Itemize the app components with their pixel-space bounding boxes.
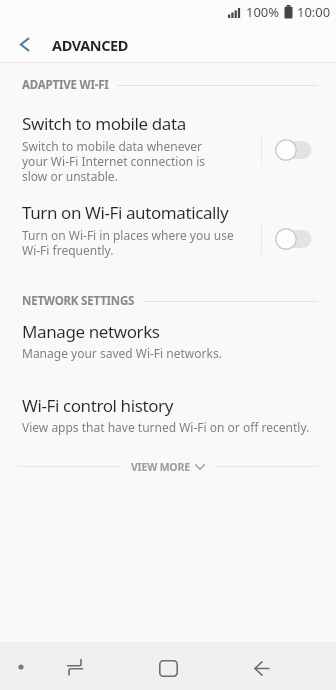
button[interactable]: [0, 27, 48, 62]
staticText: ADVANCED: [52, 35, 129, 55]
button[interactable]: [275, 228, 312, 250]
staticText: Wi-Fi control history: [22, 394, 173, 417]
staticText: Turn on Wi-Fi in places where you use Wi…: [22, 227, 234, 258]
staticText: ADAPTIVE WI-FI: [22, 77, 109, 93]
button[interactable]: Manage networks: [0, 320, 336, 394]
button[interactable]: Switch to mobile data: [0, 103, 336, 192]
button[interactable]: VIEW MORE: [0, 454, 336, 479]
staticText: 100%: [246, 3, 280, 21]
staticText: VIEW MORE: [131, 460, 190, 474]
staticText: NETWORK SETTINGS: [22, 293, 135, 309]
button[interactable]: [47, 642, 103, 690]
staticText: Switch to mobile data: [22, 112, 186, 135]
staticText: Manage your saved Wi-Fi networks.: [22, 345, 222, 361]
staticText: View apps that have turned Wi-Fi on or o…: [22, 419, 310, 435]
button[interactable]: [140, 642, 196, 690]
staticText: Turn on Wi-Fi automatically: [22, 201, 229, 224]
button[interactable]: [234, 642, 290, 690]
button[interactable]: [275, 139, 312, 161]
staticText: Switch to mobile data whenever your Wi-F…: [22, 138, 206, 184]
staticText: Manage networks: [22, 320, 160, 343]
staticText: 10:00: [297, 3, 331, 21]
button[interactable]: Turn on Wi-Fi automatically: [0, 192, 336, 266]
button[interactable]: Wi-Fi control history: [0, 394, 336, 454]
